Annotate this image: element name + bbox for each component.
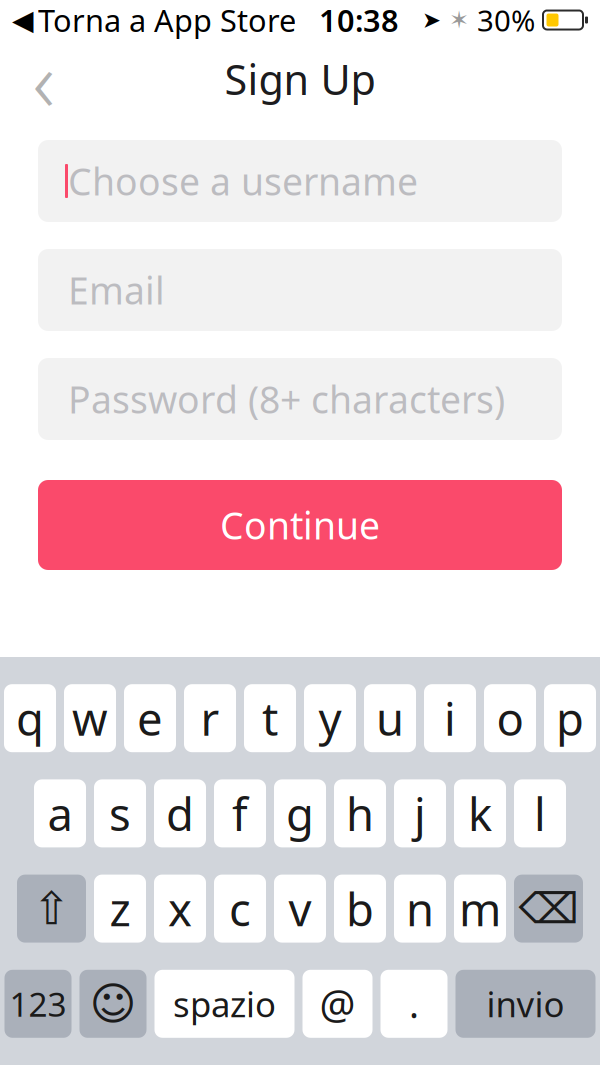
button[interactable]: Shift [17,875,86,943]
button[interactable]: r [184,684,236,752]
button[interactable]: q [4,684,56,752]
staticText: d [166,783,194,843]
staticText: Sign Up [224,52,375,106]
button[interactable]: k [454,779,506,847]
button[interactable]: v [274,875,326,943]
staticText: j [414,783,426,843]
staticText: z [109,878,130,939]
button[interactable]: Password (8+ characters) [38,358,562,440]
staticText: n [406,878,434,939]
staticText: f [232,783,248,843]
staticText: m [459,878,501,939]
staticText: b [346,878,374,939]
staticText: ⌫ [518,884,578,933]
button[interactable]: Numbers [4,970,71,1038]
staticText: l [534,783,546,843]
button[interactable]: spazio [154,970,294,1038]
button[interactable]: . [380,970,447,1038]
staticText: Torna a App Store [38,0,296,40]
staticText: c [229,878,251,939]
staticText: q [16,688,44,748]
button[interactable]: b [334,875,386,943]
staticText: Password (8+ characters) [68,374,505,424]
staticText: u [376,688,404,748]
staticText: 30% [477,0,535,39]
button[interactable]: t [244,684,296,752]
button[interactable]: Delete [514,875,583,943]
button[interactable]: i [424,684,476,752]
staticText: g [286,783,314,843]
staticText: x [168,878,192,939]
staticText: ‹ [32,22,55,136]
button[interactable]: e [124,684,176,752]
staticText: t [262,688,278,748]
staticText: spazio [173,981,276,1027]
staticText: k [468,783,492,843]
staticText: ◀ [12,4,34,36]
button[interactable]: Continue [38,480,562,570]
staticText: ⇧ [32,883,70,934]
button[interactable]: c [214,875,266,943]
button[interactable]: Choose a username [38,140,562,222]
staticText: r [200,688,219,748]
button[interactable]: p [544,684,596,752]
button[interactable]: a [34,779,86,847]
staticText: 123 [9,982,66,1026]
button[interactable]: y [304,684,356,752]
button[interactable]: h [334,779,386,847]
staticText: Continue [220,500,380,550]
button[interactable]: d [154,779,206,847]
button[interactable]: Enter [455,970,595,1038]
button[interactable]: o [484,684,536,752]
button[interactable]: s [94,779,146,847]
button[interactable]: l [514,779,566,847]
button[interactable]: x [154,875,206,943]
button[interactable]: f [214,779,266,847]
staticText: h [346,783,374,843]
staticText: s [109,783,131,843]
button[interactable]: Emoji [79,970,146,1038]
staticText: Choose a username [68,156,418,206]
button[interactable]: Email [38,249,562,331]
staticText: Email [68,265,165,315]
staticText: y [318,688,341,748]
button[interactable]: w [64,684,116,752]
staticText: ➤ [422,7,441,33]
staticText: invio [486,981,564,1027]
staticText: e [137,688,163,748]
button[interactable]: u [364,684,416,752]
button[interactable]: m [454,875,506,943]
staticText: . [409,979,419,1029]
button[interactable]: j [394,779,446,847]
staticText: v [288,878,311,939]
staticText: w [72,688,108,748]
button[interactable]: @ [302,970,372,1038]
staticText: p [556,688,584,748]
button[interactable]: n [394,875,446,943]
staticText: i [444,688,456,748]
staticText: @ [319,977,355,1030]
staticText: ✶ [449,6,469,34]
staticText: o [496,688,523,748]
staticText: ☺ [89,978,136,1030]
staticText: 10:38 [319,0,399,40]
button[interactable]: z [94,875,146,943]
button[interactable]: g [274,779,326,847]
button[interactable]: Back [12,48,76,110]
staticText: a [47,783,72,843]
